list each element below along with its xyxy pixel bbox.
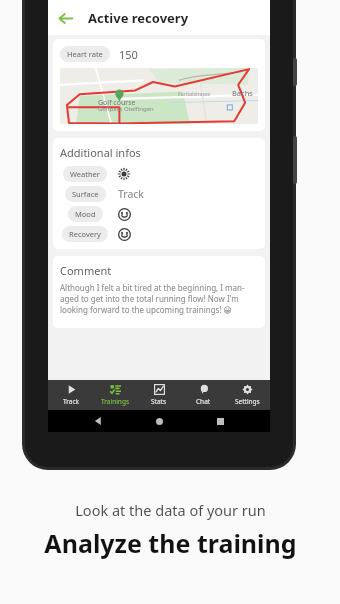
staticText: Heart rate [67, 49, 103, 59]
staticText: Stats [151, 397, 167, 406]
button[interactable]: Trainings [94, 382, 136, 408]
staticText: Track [118, 187, 144, 201]
staticText: Analyze the training [44, 526, 297, 560]
staticText: Recovery [69, 229, 101, 239]
button[interactable]: Recents [209, 410, 231, 432]
staticText: Additional infos [60, 145, 141, 160]
button[interactable]: Home [148, 410, 170, 432]
staticText: Furttalstrasse [178, 91, 211, 98]
staticText: Golfpark Otelfingen [98, 105, 154, 113]
staticText: Surface [72, 189, 99, 199]
staticText: Trainings [101, 397, 129, 406]
staticText: Active recovery [88, 9, 189, 27]
button[interactable]: Weather [60, 166, 258, 182]
button[interactable]: Mood [60, 206, 258, 222]
staticText: Weather [70, 169, 100, 179]
staticText: Settings [235, 397, 260, 406]
staticText: Chat [196, 397, 211, 406]
button[interactable]: Recovery [60, 226, 258, 242]
button[interactable]: Surface [60, 186, 258, 202]
staticText: Track [63, 397, 80, 406]
button[interactable]: Track [50, 382, 92, 408]
button[interactable]: Settings [226, 382, 268, 408]
button[interactable]: Back [87, 410, 109, 432]
staticText: Look at the data of your run [75, 500, 266, 520]
button[interactable]: Back [48, 1, 82, 35]
staticText: Mood [75, 209, 96, 219]
staticText: Golf course [98, 98, 136, 108]
staticText: 150 [119, 47, 138, 62]
button[interactable]: Stats [138, 382, 180, 408]
staticText: Although I felt a bit tired at the begin… [60, 282, 245, 315]
staticText: Bachs [232, 88, 253, 98]
button[interactable]: Chat [182, 382, 224, 408]
staticText: Comment [60, 263, 112, 278]
